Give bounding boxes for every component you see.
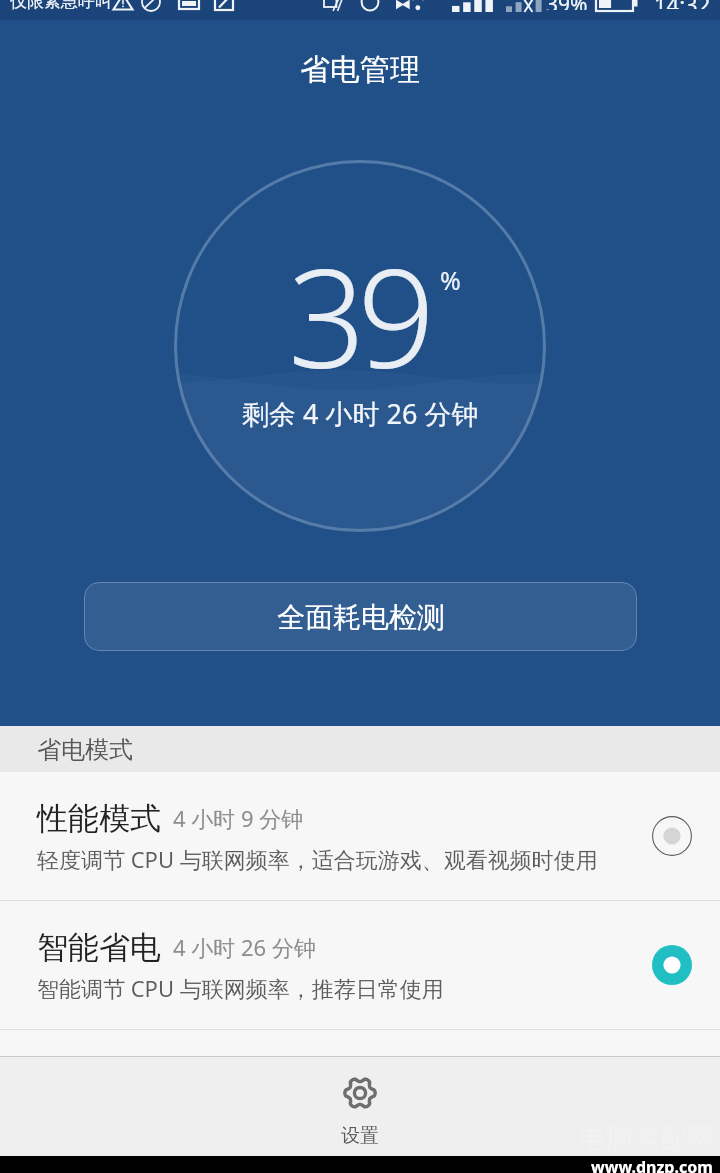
staticText: 设置 bbox=[341, 1124, 379, 1148]
staticText: 省电模式 bbox=[37, 735, 133, 765]
staticText: 4 小时 26 分钟 bbox=[173, 932, 316, 962]
other: 设置 bbox=[342, 1075, 378, 1111]
button[interactable]: Selected bbox=[644, 937, 700, 993]
button[interactable]: 全面耗电检测 bbox=[84, 582, 637, 651]
button[interactable]: 性能模式 bbox=[0, 772, 720, 900]
staticText: 14:32 bbox=[654, 0, 711, 9]
staticText: 智能调节 CPU 与联网频率，推荐日常使用 bbox=[37, 973, 444, 1003]
staticText: 省电管理 bbox=[300, 51, 420, 89]
staticText: 4 小时 9 分钟 bbox=[173, 803, 304, 833]
staticText: 全面耗电检测 bbox=[277, 600, 445, 635]
staticText: 轻度调节 CPU 与联网频率，适合玩游戏、观看视频时使用 bbox=[37, 844, 598, 874]
staticText: 性能模式 bbox=[37, 799, 161, 838]
staticText: 剩余 4 小时 26 分钟 bbox=[242, 395, 479, 432]
staticText: 仅限紧急呼叫 bbox=[10, 0, 112, 11]
staticText: 智能省电 bbox=[37, 928, 161, 967]
button[interactable]: 智能省电 bbox=[0, 901, 720, 1029]
staticText: % bbox=[440, 263, 461, 297]
button[interactable]: 设置 bbox=[0, 1057, 720, 1156]
button[interactable]: Select bbox=[644, 808, 700, 864]
staticText: 39 bbox=[288, 223, 427, 408]
staticText: www.dnzp.com bbox=[591, 1156, 713, 1173]
staticText: 39% bbox=[546, 0, 588, 10]
